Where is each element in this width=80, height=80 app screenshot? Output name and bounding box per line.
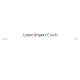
staticText: Leave Import Co-ch bbox=[23, 32, 57, 37]
staticText: Back bbox=[2, 37, 7, 41]
staticText: Next bbox=[73, 37, 78, 41]
